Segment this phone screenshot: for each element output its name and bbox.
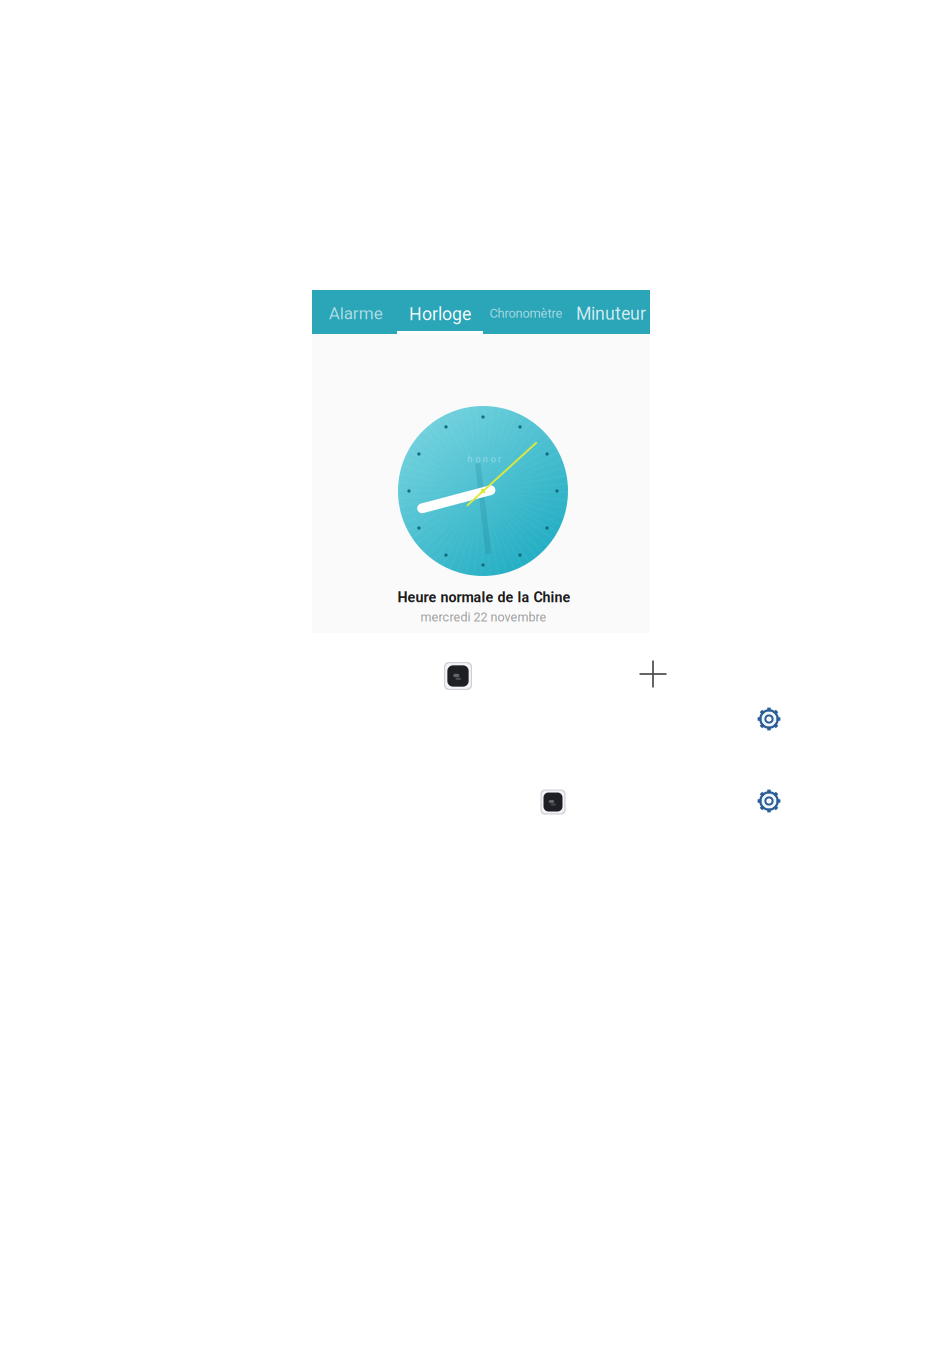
staticText: mercredi 22 novembre: [420, 610, 546, 624]
button[interactable]: Add: [639, 660, 666, 687]
staticText: Chronomètre: [489, 306, 562, 321]
button[interactable]: Image: [540, 789, 565, 814]
staticText: Heure normale de la Chine: [397, 589, 570, 606]
button[interactable]: Settings: [757, 789, 781, 813]
button[interactable]: Minuteur: [572, 292, 650, 336]
staticText: Horloge: [409, 304, 471, 325]
button[interactable]: Image: [444, 662, 472, 690]
button[interactable]: Settings: [757, 707, 781, 731]
staticText: honor: [468, 453, 501, 464]
staticText: Alarme: [329, 303, 383, 323]
button[interactable]: Alarme: [314, 291, 398, 335]
staticText: Minuteur: [576, 303, 646, 324]
button[interactable]: Chronomètre: [483, 291, 569, 335]
button[interactable]: Horloge: [397, 292, 483, 336]
